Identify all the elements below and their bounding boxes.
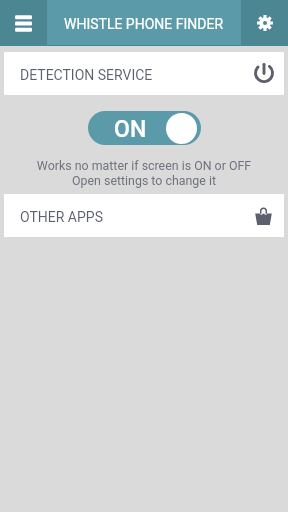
button[interactable]: OTHER APPS [4,194,284,237]
staticText: OTHER APPS [20,209,103,225]
button[interactable]: Open navigation menu [0,0,47,46]
other: Other apps [255,207,272,225]
button[interactable]: Detection service on [88,111,201,145]
button[interactable]: DETECTION SERVICE [4,52,284,95]
other: Power [254,63,274,84]
staticText: Works no matter if screen is ON or OFF O… [0,158,288,188]
staticText: WHISTLE PHONE FINDER [64,16,224,32]
staticText: DETECTION SERVICE [20,67,153,83]
button[interactable]: Settings [241,0,288,46]
staticText: ON [114,116,147,143]
